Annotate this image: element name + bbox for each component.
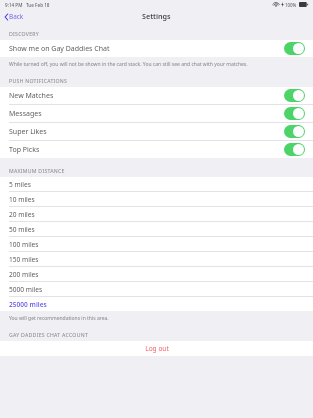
staticText: Super Likes (9, 127, 284, 137)
button[interactable]: 10 miles (0, 192, 313, 206)
staticText: 5 miles (9, 180, 31, 189)
staticText: Messages (9, 109, 284, 119)
staticText: 100 miles (9, 240, 39, 249)
staticText: 100% (285, 2, 297, 8)
staticText: Back (9, 12, 24, 21)
staticText: Log out (145, 344, 169, 353)
staticText: GAY DADDIES CHAT ACCOUNT (9, 331, 89, 338)
staticText: MAXIMUM DISTANCE (9, 167, 65, 174)
staticText: Top Picks (9, 145, 284, 155)
staticText: Tue Feb 18 (26, 2, 50, 8)
button[interactable]: Log out (0, 341, 313, 356)
button[interactable]: New Matches (0, 87, 313, 104)
staticText: Settings (142, 11, 171, 21)
staticText: Show me on Gay Daddies Chat (9, 44, 284, 54)
staticText: While turned off, you will not be shown … (9, 61, 248, 68)
button[interactable]: 200 miles (0, 267, 313, 281)
staticText: 9:14 PM (5, 2, 23, 8)
staticText: 200 miles (9, 270, 39, 279)
button[interactable]: 25000 miles (0, 297, 313, 311)
button[interactable]: 100 miles (0, 237, 313, 251)
staticText: 20 miles (9, 210, 35, 219)
button[interactable]: 5000 miles (0, 282, 313, 296)
button[interactable]: Super Likes (0, 123, 313, 140)
button[interactable]: 150 miles (0, 252, 313, 266)
button[interactable]: Back (0, 10, 30, 23)
button[interactable]: 20 miles (0, 207, 313, 221)
button[interactable]: Show me on Gay Daddies Chat (0, 40, 313, 57)
staticText: New Matches (9, 91, 284, 101)
staticText: 10 miles (9, 195, 35, 204)
staticText: 25000 miles (9, 300, 47, 309)
button[interactable]: 50 miles (0, 222, 313, 236)
staticText: 150 miles (9, 255, 39, 264)
staticText: You will get recommendations in this are… (9, 315, 109, 322)
button[interactable]: Top Picks (0, 141, 313, 158)
staticText: PUSH NOTIFICATIONS (9, 77, 68, 84)
staticText: DISCOVERY (9, 30, 39, 37)
staticText: 50 miles (9, 225, 35, 234)
other: Wi-Fi (273, 2, 279, 7)
button[interactable]: 5 miles (0, 177, 313, 191)
staticText: 5000 miles (9, 285, 43, 294)
button[interactable]: Messages (0, 105, 313, 122)
